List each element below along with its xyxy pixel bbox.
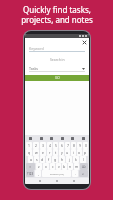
staticText: s [36, 157, 38, 162]
button[interactable]: 4 [47, 142, 52, 149]
button[interactable]: t [53, 149, 58, 156]
staticText: . [75, 171, 76, 176]
button[interactable]: Shift [26, 163, 35, 170]
staticText: 1 [28, 143, 30, 148]
staticText: y [61, 150, 63, 155]
staticText: x [45, 164, 47, 169]
button[interactable]: h [59, 156, 65, 163]
staticText: Tasks [29, 66, 39, 71]
button[interactable]: Symbols [26, 170, 34, 177]
staticText: 3 [42, 143, 44, 148]
staticText: g [54, 157, 57, 162]
staticText: 9 [79, 143, 81, 148]
button[interactable]: b [62, 163, 67, 170]
button[interactable]: v [56, 163, 61, 170]
staticText: Keyword [29, 46, 44, 51]
staticText: p [84, 150, 87, 155]
button[interactable]: GO [25, 75, 89, 81]
staticText: 6 [61, 143, 63, 148]
button[interactable]: f [46, 156, 51, 163]
staticText: ⌦ [82, 165, 86, 168]
button[interactable]: Emoji [39, 136, 44, 141]
button[interactable]: 1 [26, 142, 32, 149]
button[interactable]: e [40, 149, 46, 156]
button[interactable]: Backspace [80, 163, 88, 170]
staticText: q [28, 150, 31, 155]
button[interactable]: Close search [82, 40, 87, 45]
button[interactable]: m [74, 163, 79, 170]
staticText: 4 [49, 143, 51, 148]
button[interactable]: 6 [59, 142, 64, 149]
button[interactable]: 0 [83, 142, 88, 149]
button[interactable]: GIF [49, 136, 54, 141]
staticText: c [52, 164, 54, 169]
button[interactable]: i [71, 149, 76, 156]
staticText: k [75, 157, 77, 162]
staticText: 8 [73, 143, 75, 148]
button[interactable]: a [28, 156, 33, 163]
button[interactable]: w [33, 149, 39, 156]
button[interactable]: Enter [79, 170, 88, 177]
button[interactable]: More [81, 136, 86, 141]
staticText: r [49, 150, 51, 155]
button[interactable]: y [59, 149, 64, 156]
button[interactable]: 7 [65, 142, 70, 149]
staticText: h [61, 157, 64, 162]
button[interactable]: z [36, 163, 42, 170]
button[interactable]: Recents [72, 179, 76, 183]
staticText: English (US) [50, 172, 64, 175]
button[interactable]: d [40, 156, 45, 163]
button[interactable]: j [66, 156, 72, 163]
staticText: Quickly find tasks, projects, and notes [21, 4, 93, 25]
staticText: u [66, 150, 69, 155]
staticText: 0 [85, 143, 87, 148]
button[interactable]: p [83, 149, 88, 156]
staticText: b [63, 164, 66, 169]
staticText: d [41, 157, 44, 162]
button[interactable]: 5 [53, 142, 58, 149]
staticText: w [35, 150, 38, 155]
button[interactable]: c [50, 163, 55, 170]
staticText: o [78, 150, 81, 155]
button[interactable]: x [43, 163, 49, 170]
staticText: j [69, 157, 70, 162]
staticText: ↵ [82, 172, 85, 175]
button[interactable]: 8 [71, 142, 76, 149]
staticText: Search in [50, 57, 65, 62]
button[interactable]: 2 [33, 142, 39, 149]
button[interactable]: r [47, 149, 52, 156]
button[interactable]: English (US) [42, 170, 71, 177]
button[interactable]: u [65, 149, 70, 156]
staticText: , [38, 171, 39, 176]
staticText: t [55, 150, 57, 155]
button[interactable]: l [80, 156, 86, 163]
button[interactable]: n [68, 163, 73, 170]
staticText: GO [55, 76, 60, 80]
staticText: e [42, 150, 44, 155]
button[interactable]: q [26, 149, 32, 156]
staticText: 7 [67, 143, 69, 148]
button[interactable]: g [52, 156, 58, 163]
button[interactable]: . [72, 170, 78, 177]
button[interactable]: 9 [77, 142, 82, 149]
staticText: ?123 [27, 172, 34, 176]
button[interactable]: k [73, 156, 79, 163]
button[interactable]: o [77, 149, 82, 156]
button[interactable]: 3 [40, 142, 46, 149]
button[interactable]: , [35, 170, 41, 177]
button[interactable]: Back [38, 179, 42, 183]
button[interactable]: Sticker [60, 136, 65, 141]
button[interactable]: Home [55, 179, 59, 183]
staticText: v [58, 164, 60, 169]
staticText: m [75, 164, 79, 169]
button[interactable]: Mic [70, 136, 75, 141]
button[interactable]: Tasks [29, 66, 85, 71]
staticText: 2 [35, 143, 37, 148]
staticText: i [73, 150, 74, 155]
button[interactable]: Settings [28, 136, 33, 141]
staticText: n [69, 164, 72, 169]
staticText: ⇧ [29, 165, 32, 168]
button[interactable]: Keyword [29, 46, 85, 51]
button[interactable]: s [34, 156, 39, 163]
staticText: z [38, 164, 40, 169]
